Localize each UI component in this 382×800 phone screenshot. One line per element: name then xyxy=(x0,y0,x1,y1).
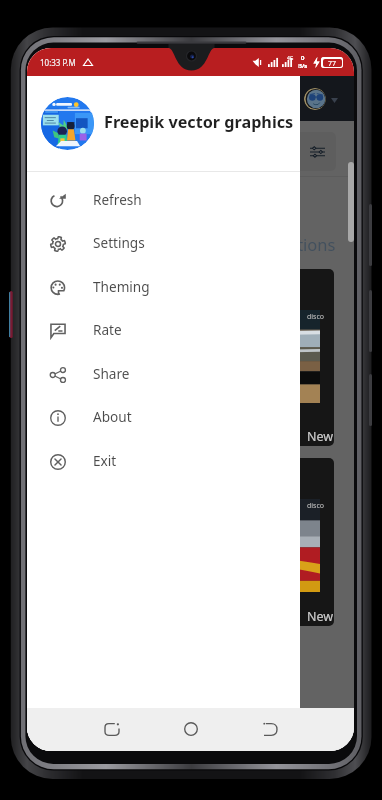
button[interactable]: Share xyxy=(27,353,300,397)
staticText: Collections xyxy=(251,233,336,255)
staticText: 77 xyxy=(328,59,337,67)
staticText: Refresh xyxy=(93,190,142,209)
button[interactable]: Settings xyxy=(27,222,300,266)
staticText: disco xyxy=(307,312,325,322)
staticText: disco xyxy=(307,501,325,511)
button[interactable]: Recent apps xyxy=(95,712,129,746)
button[interactable]: Filter xyxy=(263,132,336,171)
staticText: 10:33 P.M xyxy=(40,57,76,68)
staticText: Settings xyxy=(93,233,145,252)
button[interactable]: Expand xyxy=(328,94,340,106)
button[interactable]: disco xyxy=(37,458,334,626)
button[interactable]: Theming xyxy=(27,266,300,310)
staticText: Rate xyxy=(93,320,122,339)
button[interactable]: disco xyxy=(37,269,334,446)
staticText: New xyxy=(307,428,334,445)
staticText: 10:33 P.M xyxy=(40,57,76,68)
staticText: 4G xyxy=(287,55,294,62)
button[interactable]: Profile xyxy=(304,88,326,110)
button[interactable]: Home xyxy=(174,712,208,746)
button[interactable]: Back xyxy=(253,712,287,746)
staticText: Share xyxy=(93,364,130,383)
staticText: 0 xyxy=(301,54,305,62)
staticText: B/s xyxy=(298,62,308,70)
staticText: 77 xyxy=(328,59,337,67)
staticText: Exit xyxy=(93,451,117,470)
staticText: Freepik vector graphics xyxy=(104,111,294,133)
button[interactable]: Refresh xyxy=(27,179,300,223)
staticText: 0 xyxy=(301,54,305,62)
button[interactable]: About xyxy=(27,396,300,440)
staticText: About xyxy=(93,407,132,426)
button[interactable]: Exit xyxy=(27,440,300,484)
button[interactable]: Rate xyxy=(27,309,300,353)
staticText: B/s xyxy=(298,62,308,70)
staticText: 4G xyxy=(287,55,294,62)
staticText: New xyxy=(307,608,334,625)
staticText: Theming xyxy=(93,277,150,296)
